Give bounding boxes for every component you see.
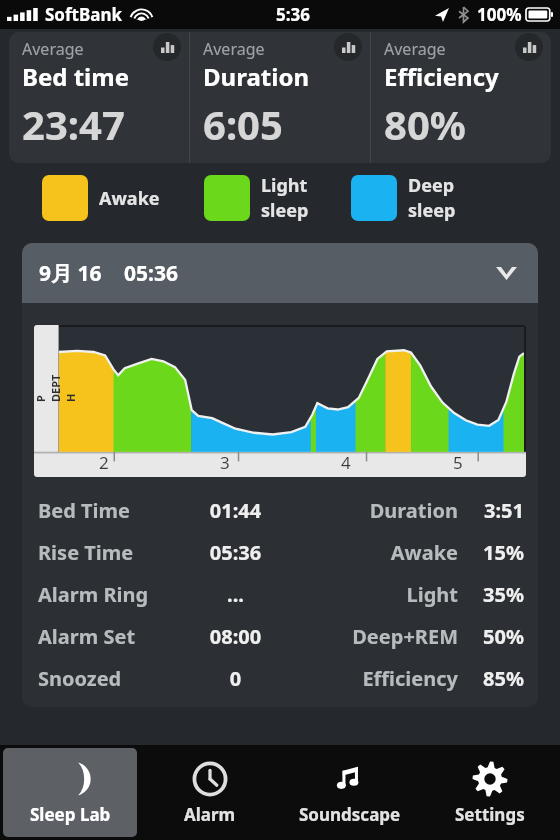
button[interactable]: Rise Time (38, 531, 524, 573)
staticText: Bed time (22, 60, 130, 93)
staticText: 35% (470, 581, 524, 608)
button[interactable]: Show chart (515, 33, 543, 61)
staticText: Average (203, 38, 265, 60)
staticText: 9月 16 (39, 259, 102, 288)
button[interactable]: Average (371, 32, 551, 163)
staticText: Snoozed (38, 665, 176, 692)
staticText: 4 (341, 451, 351, 474)
button[interactable]: Average (9, 32, 189, 163)
staticText: ... (176, 581, 295, 608)
staticText: Sleep Lab (30, 803, 111, 826)
staticText: Duration (203, 60, 309, 93)
staticText: 50% (470, 623, 524, 650)
staticText: 80% (384, 97, 466, 151)
staticText: 5 (453, 451, 463, 474)
staticText: Light (261, 173, 308, 198)
other: Expand details (491, 258, 521, 288)
button[interactable]: Alarm Ring (38, 573, 524, 615)
staticText: Awake (99, 186, 160, 211)
button[interactable]: Sleep depth graph (34, 325, 526, 477)
button[interactable]: Soundscape (283, 748, 417, 837)
staticText: 100% (477, 3, 522, 26)
staticText: 5:36 (276, 3, 310, 26)
button[interactable]: Awake (42, 175, 160, 221)
staticText: SLEEP DEPTH (34, 374, 78, 402)
button[interactable]: Alarm (143, 748, 277, 837)
button[interactable]: Settings (423, 748, 557, 837)
staticText: Deep+REM (295, 623, 458, 650)
staticText: 2 (99, 451, 109, 474)
staticText: 08:00 (176, 623, 295, 650)
staticText: sleep (261, 198, 309, 223)
staticText: Awake (295, 539, 458, 566)
button[interactable]: Deep (351, 173, 456, 223)
staticText: Alarm Ring (38, 581, 176, 608)
staticText: Settings (455, 803, 525, 826)
staticText: 0 (176, 665, 295, 692)
staticText: sleep (408, 198, 456, 223)
staticText: 3 (220, 451, 230, 474)
button[interactable]: Average (190, 32, 370, 163)
staticText: 85% (470, 665, 524, 692)
button[interactable]: Bed Time (38, 489, 524, 531)
staticText: Rise Time (38, 539, 176, 566)
staticText: Soundscape (299, 803, 401, 826)
staticText: Light (295, 581, 458, 608)
staticText: Bed Time (38, 497, 176, 524)
staticText: 05:36 (124, 259, 178, 288)
staticText: Duration (295, 497, 458, 524)
staticText: Deep (408, 173, 455, 198)
button[interactable]: Snoozed (38, 657, 524, 699)
button[interactable]: Show chart (334, 33, 362, 61)
staticText: 15% (470, 539, 524, 566)
button[interactable]: Alarm Set (38, 615, 524, 657)
staticText: SoftBank (45, 3, 123, 26)
staticText: 23:47 (22, 97, 125, 151)
staticText: 3:51 (470, 497, 524, 524)
button[interactable]: Sleep Lab (3, 748, 137, 837)
staticText: Average (22, 38, 84, 60)
staticText: Average (384, 38, 446, 60)
staticText: Efficiency (295, 665, 458, 692)
button[interactable]: 9月 16 (39, 243, 521, 303)
staticText: 05:36 (176, 539, 295, 566)
staticText: Alarm (184, 803, 236, 826)
button[interactable]: Show chart (153, 33, 181, 61)
staticText: Alarm Set (38, 623, 176, 650)
staticText: 01:44 (176, 497, 295, 524)
staticText: Efficiency (384, 60, 499, 93)
staticText: 6:05 (203, 97, 283, 151)
button[interactable]: Light (204, 173, 309, 223)
